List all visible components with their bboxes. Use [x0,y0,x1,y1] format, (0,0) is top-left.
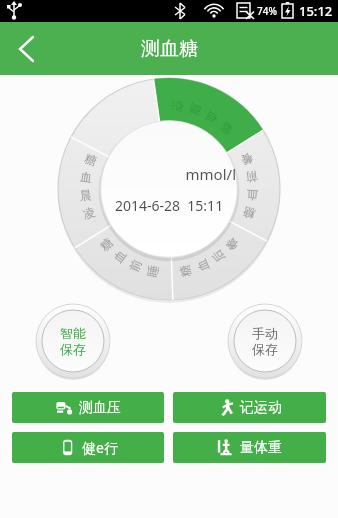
staticText: 记运动 [240,399,282,417]
staticText: 凌 [81,204,97,222]
staticText: 74% [257,4,277,18]
staticText: 手动 保存 [252,325,278,358]
button[interactable]: 测血压 [12,392,164,423]
staticText: 糖 [83,150,99,169]
staticText: 睡 [144,263,161,278]
staticText: 健e行 [82,438,118,457]
button[interactable]: 智能 保存 [36,304,110,378]
staticText: mmol/l [103,164,236,184]
staticText: 晨 [79,187,92,203]
staticText: 前 [126,257,145,274]
staticText: 量体重 [240,439,282,457]
staticText: 糖 [97,234,116,254]
staticText: 糖 [217,119,236,138]
staticText: 15:12 [299,2,333,20]
staticText: 后 [209,247,228,266]
button[interactable]: Back [0,24,50,74]
staticText: 血 [203,109,222,127]
button[interactable]: 手动 保存 [228,304,302,378]
staticText: 血 [79,169,93,185]
staticText: 餐 [222,234,241,254]
staticText: 测血压 [79,399,121,417]
button[interactable]: 记运动 [173,392,326,423]
staticText: 2014-6-28 15:11 [115,196,224,215]
button[interactable]: 健e行 [12,432,164,463]
button[interactable]: 量体重 [173,432,326,463]
staticText: 餐 [239,150,255,169]
staticText: 糖 [241,204,257,222]
staticText: 糖 [177,263,194,278]
staticText: 空 [170,99,186,113]
staticText: 血 [193,257,212,274]
staticText: 血 [110,247,129,266]
staticText: 智能 保存 [60,325,86,358]
staticText: 前 [245,169,259,185]
staticText: 血 [246,187,259,203]
staticText: 腹 [187,102,205,118]
staticText: 测血糖 [141,37,198,61]
